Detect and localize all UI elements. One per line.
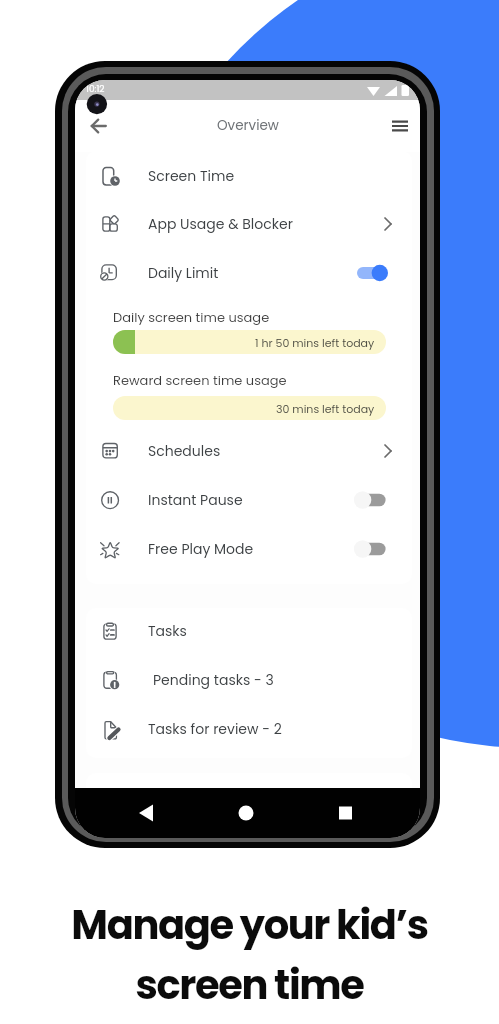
button[interactable]: Instant Pause: [86, 475, 412, 524]
button[interactable]: Back: [83, 110, 115, 142]
button[interactable]: Screen Time: [86, 151, 412, 200]
staticText: Schedules: [148, 441, 221, 461]
staticText: Pending tasks - 3: [153, 670, 274, 690]
staticText: Instant Pause: [148, 490, 243, 510]
staticText: 1 hr 50 mins left today: [255, 335, 375, 350]
staticText: Tasks: [148, 621, 187, 641]
staticText: Reward screen time usage: [113, 371, 287, 389]
button[interactable]: Tasks: [86, 608, 412, 655]
button[interactable]: Pending tasks - 3: [86, 655, 412, 704]
staticText: Daily Limit: [148, 263, 219, 283]
button[interactable]: Schedules: [86, 426, 412, 475]
button[interactable]: Tasks for review - 2: [86, 704, 412, 753]
staticText: Manage your kid’s screen time: [0, 897, 499, 1013]
button[interactable]: Free Play Mode: [86, 524, 412, 573]
staticText: 30 mins left today: [276, 401, 375, 416]
staticText: 10:12: [86, 83, 105, 96]
staticText: App Usage & Blocker: [148, 214, 293, 234]
staticText: Daily screen time usage: [113, 308, 270, 326]
button[interactable]: Daily Limit: [86, 248, 412, 297]
staticText: Free Play Mode: [148, 539, 254, 559]
staticText: Tasks for review - 2: [148, 719, 282, 739]
staticText: Screen Time: [148, 166, 235, 186]
staticText: Overview: [217, 116, 279, 135]
button[interactable]: App Usage & Blocker: [86, 199, 412, 248]
button[interactable]: Menu: [384, 110, 416, 142]
